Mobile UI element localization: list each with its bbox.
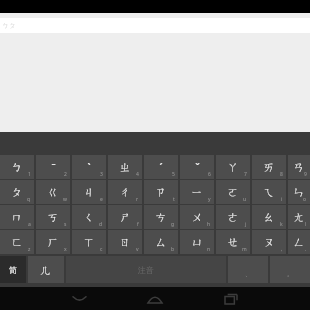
button[interactable]: ㄓ	[108, 155, 142, 179]
button[interactable]: ㄈ	[0, 230, 34, 254]
staticText: ㄕ	[119, 210, 131, 224]
staticText: ㄞ	[263, 160, 275, 174]
staticText: ㄗ	[155, 185, 167, 199]
button[interactable]: ㄦ	[28, 256, 64, 283]
staticText: y	[208, 196, 211, 203]
staticText: e	[100, 196, 103, 203]
staticText: 4	[136, 171, 139, 178]
staticText: ㄨ	[191, 210, 203, 224]
staticText: ㄅ	[11, 160, 23, 174]
button[interactable]: ㄒ	[72, 230, 106, 254]
staticText: a	[28, 221, 31, 228]
button[interactable]: ㄨ	[180, 205, 214, 229]
staticText: u	[243, 196, 247, 203]
button[interactable]: ㄢ	[288, 155, 310, 179]
staticText: ㄣ	[293, 185, 305, 199]
button[interactable]: ㄠ	[252, 205, 286, 229]
staticText: ㄢ	[293, 160, 305, 174]
staticText: ㄩ	[191, 235, 203, 249]
staticText: 。	[287, 270, 293, 278]
button[interactable]: ㄣ	[288, 180, 310, 204]
button[interactable]: ㄧ	[180, 180, 214, 204]
button[interactable]: ˇ	[180, 155, 214, 179]
button[interactable]: ㄅ	[0, 155, 34, 179]
staticText: ㄘ	[155, 210, 167, 224]
button[interactable]: ㄤ	[288, 205, 310, 229]
staticText: o	[303, 196, 307, 203]
staticText: 、	[245, 270, 251, 278]
staticText: 3	[100, 171, 103, 178]
button[interactable]: ㄥ	[288, 230, 310, 254]
button[interactable]: ㄍ	[36, 180, 70, 204]
button[interactable]: ㄙ	[144, 230, 178, 254]
staticText: w	[63, 196, 67, 203]
staticText: ㄐ	[83, 185, 95, 199]
staticText: ㄜ	[227, 210, 239, 224]
staticText: ˇ	[195, 160, 200, 175]
button[interactable]: ㄎ	[36, 205, 70, 229]
staticText: ˉ	[51, 160, 56, 175]
button[interactable]: ㄘ	[144, 205, 178, 229]
staticText: k	[280, 221, 283, 228]
button[interactable]: ㄞ	[252, 155, 286, 179]
staticText: 简	[9, 265, 17, 275]
staticText: ㄧ	[191, 185, 203, 199]
button[interactable]: ㄟ	[252, 180, 286, 204]
staticText: 7	[244, 171, 247, 178]
staticText: d	[99, 221, 103, 228]
staticText: ,	[281, 246, 283, 253]
staticText: .	[305, 246, 307, 253]
staticText: r	[136, 196, 139, 203]
button[interactable]: 简	[0, 256, 26, 283]
button[interactable]: ㄖ	[108, 230, 142, 254]
button[interactable]: ㄕ	[108, 205, 142, 229]
staticText: ㄆ	[11, 185, 23, 199]
button[interactable]: ˊ	[144, 155, 178, 179]
staticText: ㄦ	[40, 263, 52, 277]
staticText: l	[305, 221, 307, 228]
button[interactable]: ㄇ	[0, 205, 34, 229]
button[interactable]: ㄐ	[72, 180, 106, 204]
button[interactable]: ㄗ	[144, 180, 178, 204]
button[interactable]: ㄛ	[216, 180, 250, 204]
button[interactable]: ˋ	[72, 155, 106, 179]
button[interactable]: ㄡ	[252, 230, 286, 254]
button[interactable]: ㄜ	[216, 205, 250, 229]
staticText: m	[242, 246, 247, 253]
staticText: ㄟ	[263, 185, 275, 199]
staticText: ㄙ	[155, 235, 167, 249]
staticText: ㄈ	[11, 235, 23, 249]
button[interactable]: ㄚ	[216, 155, 250, 179]
staticText: ㄤ	[293, 210, 305, 224]
staticText: ㄛ	[227, 185, 239, 199]
button[interactable]: Home	[132, 287, 178, 310]
button[interactable]: ˉ	[36, 155, 70, 179]
button[interactable]: Hide keyboard	[56, 287, 102, 310]
staticText: 5	[172, 171, 175, 178]
staticText: ㄖ	[119, 235, 131, 249]
staticText: i	[281, 196, 283, 203]
button[interactable]: Recent apps	[208, 287, 254, 310]
staticText: t	[173, 196, 175, 203]
staticText: 9	[304, 171, 307, 178]
button[interactable]: ㄏ	[36, 230, 70, 254]
staticText: ㄅㄆ	[2, 21, 17, 30]
button[interactable]: ㄑ	[72, 205, 106, 229]
staticText: ㄚ	[227, 160, 239, 174]
staticText: ˋ	[87, 160, 91, 175]
staticText: g	[171, 221, 175, 228]
button[interactable]: ㄝ	[216, 230, 250, 254]
button[interactable]: ㄩ	[180, 230, 214, 254]
staticText: ㄑ	[83, 210, 95, 224]
staticText: ㄏ	[47, 235, 59, 249]
staticText: f	[137, 221, 139, 228]
button[interactable]: ㄔ	[108, 180, 142, 204]
staticText: j	[245, 221, 247, 228]
button[interactable]: ㄆ	[0, 180, 34, 204]
staticText: h	[207, 221, 211, 228]
